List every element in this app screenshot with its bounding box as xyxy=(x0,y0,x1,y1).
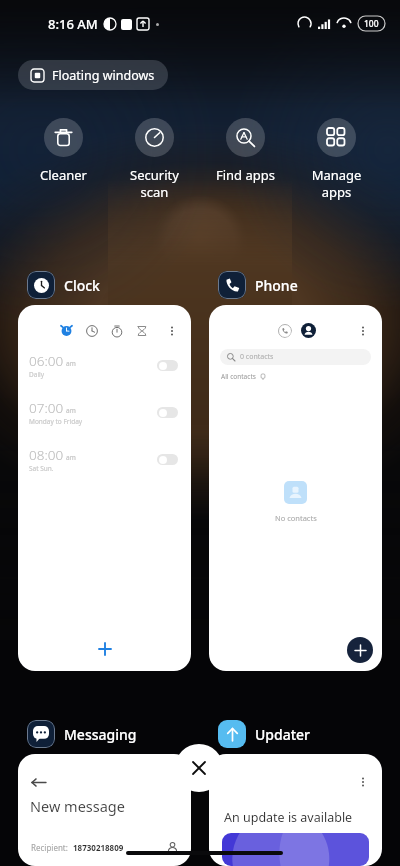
staticText: am xyxy=(66,359,76,368)
button[interactable]: Messaging xyxy=(18,720,137,754)
button[interactable]: More options xyxy=(165,324,179,338)
staticText: 06:00 xyxy=(29,352,64,370)
button[interactable]: Floating windows xyxy=(18,60,168,90)
staticText: am xyxy=(66,406,76,415)
button[interactable]: Updater xyxy=(209,720,311,754)
staticText: Messaging xyxy=(64,725,137,744)
staticText: Recipient: xyxy=(31,842,68,853)
staticText: Security scan xyxy=(109,166,200,201)
staticText: Floating windows xyxy=(52,67,155,84)
staticText: No contacts xyxy=(275,513,317,523)
staticText: New message xyxy=(30,796,125,816)
staticText: 100 xyxy=(364,18,379,30)
button[interactable]: Contacts xyxy=(301,323,316,338)
button[interactable]: Toggle alarm xyxy=(157,407,178,418)
button[interactable]: Recipient: xyxy=(31,842,178,853)
button[interactable]: Phone xyxy=(209,271,298,305)
button[interactable]: Security scan xyxy=(109,118,200,201)
staticText: 18730218809 xyxy=(73,842,124,853)
button[interactable]: Alarm xyxy=(18,305,191,671)
staticText: Find apps xyxy=(200,166,291,184)
button[interactable]: Alarm xyxy=(59,323,74,338)
button[interactable]: Manage apps xyxy=(291,118,382,201)
button[interactable]: Dialer xyxy=(277,323,292,338)
staticText: 0 contacts xyxy=(240,352,274,362)
staticText: An update is available xyxy=(224,809,353,826)
staticText: 8:16 AM xyxy=(48,15,98,33)
staticText: 08:00 xyxy=(29,446,64,464)
button[interactable]: Stopwatch xyxy=(109,323,124,338)
staticText: am xyxy=(66,453,76,462)
button[interactable]: Dialer xyxy=(209,305,382,671)
staticText: Daily xyxy=(29,370,45,379)
button[interactable]: More options xyxy=(209,754,382,866)
staticText: Clock xyxy=(64,276,100,295)
button[interactable]: 07:00 xyxy=(29,399,178,426)
button[interactable]: Add contact xyxy=(347,637,373,663)
button[interactable]: Back xyxy=(31,775,46,790)
staticText: Cleaner xyxy=(18,166,109,184)
button[interactable]: Back xyxy=(18,754,191,866)
staticText: Phone xyxy=(255,276,298,295)
staticText: Monday to Friday xyxy=(29,417,83,426)
staticText: 07:00 xyxy=(29,399,64,417)
button[interactable]: Clock xyxy=(18,271,100,305)
button[interactable]: 08:00 xyxy=(29,446,178,473)
button[interactable]: More options xyxy=(356,324,370,338)
button[interactable]: 06:00 xyxy=(29,352,178,379)
button[interactable]: More options xyxy=(356,775,370,789)
staticText: Updater xyxy=(255,725,311,744)
button[interactable]: Toggle alarm xyxy=(157,454,178,465)
staticText: All contacts xyxy=(221,372,256,381)
staticText: Sat Sun. xyxy=(29,464,54,473)
button[interactable]: World clock xyxy=(84,323,99,338)
button[interactable]: 0 contacts xyxy=(220,349,371,365)
staticText: Manage apps xyxy=(291,166,382,201)
button[interactable]: Cleaner xyxy=(18,118,109,184)
button[interactable]: Find apps xyxy=(200,118,291,184)
button[interactable]: Toggle alarm xyxy=(157,360,178,371)
button[interactable]: Add alarm xyxy=(90,634,120,664)
button[interactable]: Timer xyxy=(134,323,149,338)
button[interactable]: Close xyxy=(175,744,223,792)
